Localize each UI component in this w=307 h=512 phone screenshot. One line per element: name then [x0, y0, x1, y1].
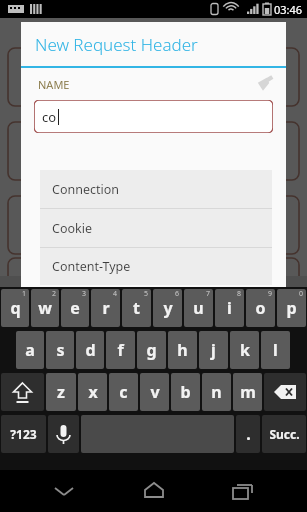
staticText: n — [211, 381, 222, 403]
staticText: q — [10, 297, 21, 319]
staticText: g — [146, 339, 157, 361]
staticText: s — [56, 339, 65, 361]
button[interactable]: j — [199, 331, 228, 369]
staticText: c — [119, 381, 128, 403]
button[interactable]: v — [140, 373, 169, 411]
button[interactable]: r — [91, 289, 120, 327]
staticText: 4 — [113, 289, 118, 299]
button[interactable]: p — [277, 289, 306, 327]
button[interactable]: t — [122, 289, 151, 327]
staticText: ?123 — [10, 426, 37, 442]
button[interactable]: q — [1, 289, 29, 327]
button[interactable]: Connection — [40, 170, 272, 208]
button[interactable]: y — [153, 289, 182, 327]
button[interactable]: Home — [128, 470, 180, 512]
staticText: e — [70, 297, 80, 319]
button[interactable]: h — [168, 331, 197, 369]
staticText: y — [163, 297, 173, 319]
staticText: p — [286, 297, 297, 319]
button[interactable]: n — [202, 373, 231, 411]
staticText: r — [102, 297, 110, 319]
staticText: t — [133, 297, 140, 319]
staticText: f — [117, 339, 124, 361]
staticText: Cookie — [52, 220, 92, 237]
staticText: z — [57, 381, 65, 403]
button[interactable]: Cookie — [40, 209, 272, 247]
staticText: u — [193, 297, 204, 319]
button[interactable]: e — [61, 289, 89, 327]
button[interactable]: Shift — [1, 373, 44, 411]
staticText: h — [177, 339, 188, 361]
button[interactable]: u — [184, 289, 213, 327]
staticText: l — [273, 339, 278, 361]
button[interactable]: Succ. — [262, 415, 306, 453]
button[interactable]: b — [171, 373, 200, 411]
button[interactable]: co — [34, 100, 273, 133]
button[interactable]: z — [46, 373, 76, 411]
button[interactable]: Recents — [217, 470, 269, 512]
button[interactable]: Voice input — [48, 415, 79, 453]
button[interactable]: d — [76, 331, 104, 369]
staticText: 6 — [175, 289, 180, 299]
staticText: w — [38, 297, 52, 319]
staticText: 9 — [268, 289, 273, 299]
staticText: 3 — [82, 289, 87, 299]
button[interactable]: ?123 — [1, 415, 46, 453]
staticText: m — [240, 381, 256, 403]
staticText: NAME — [38, 77, 70, 92]
staticText: 5 — [144, 289, 149, 299]
button[interactable]: x — [78, 373, 107, 411]
staticText: Succ. — [269, 426, 300, 442]
staticText: k — [240, 339, 250, 361]
staticText: a — [25, 339, 35, 361]
staticText: 2 — [52, 289, 57, 299]
staticText: i — [227, 297, 232, 319]
button[interactable]: Clear — [250, 71, 276, 97]
staticText: j — [211, 339, 216, 361]
button[interactable]: l — [261, 331, 290, 369]
button[interactable]: m — [233, 373, 262, 411]
staticText: 1 — [22, 289, 27, 299]
staticText: x — [88, 381, 98, 403]
button[interactable]: g — [137, 331, 166, 369]
staticText: 7 — [206, 289, 211, 299]
staticText: New Request Header — [35, 33, 198, 56]
button[interactable]: f — [106, 331, 135, 369]
staticText: 03:46 — [274, 2, 303, 17]
staticText: co — [42, 108, 57, 126]
staticText: d — [85, 339, 96, 361]
staticText: b — [180, 381, 191, 403]
staticText: 0 — [299, 289, 304, 299]
button[interactable]: a — [16, 331, 44, 369]
button[interactable]: . — [236, 415, 260, 453]
button[interactable]: c — [109, 373, 138, 411]
staticText: 8 — [237, 289, 242, 299]
staticText: Content-Type — [52, 258, 131, 275]
button[interactable]: Content-Type — [40, 248, 272, 285]
button[interactable]: w — [31, 289, 59, 327]
button[interactable]: k — [230, 331, 259, 369]
button[interactable]: i — [215, 289, 244, 327]
button[interactable]: s — [46, 331, 74, 369]
button[interactable]: Backspace — [264, 373, 306, 411]
button[interactable]: Hide keyboard — [38, 470, 90, 512]
staticText: Connection — [52, 181, 119, 198]
staticText: v — [150, 381, 160, 403]
button[interactable]: o — [246, 289, 275, 327]
staticText: o — [255, 297, 266, 319]
staticText: . — [246, 423, 251, 445]
